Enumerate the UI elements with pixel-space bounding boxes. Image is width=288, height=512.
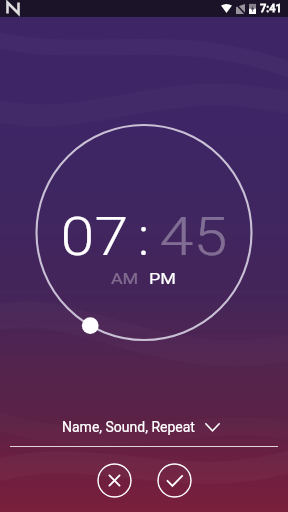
staticText: Name, Sound, Repeat [62,419,195,435]
staticText: 07 [61,206,128,268]
staticText: 7:41 [260,2,282,15]
staticText: 45 [160,206,227,268]
button[interactable]: Cancel [97,463,132,498]
button[interactable]: PM [152,271,174,287]
button[interactable]: Confirm [157,463,192,498]
button[interactable]: 07 [65,206,124,268]
button[interactable]: Name, Sound, Repeat [0,412,288,446]
staticText: PM [149,271,177,287]
button[interactable]: 45 [164,206,223,268]
staticText: AM [111,271,139,287]
button[interactable]: AM [114,271,136,287]
staticText: : [138,206,150,268]
